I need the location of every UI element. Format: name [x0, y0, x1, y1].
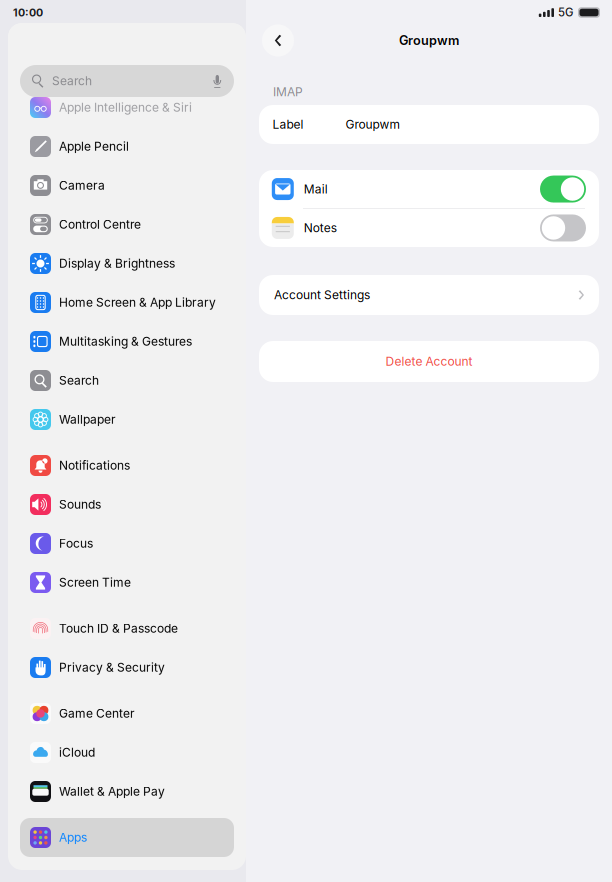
button[interactable]: Wallpaper — [20, 400, 234, 439]
staticText: Wallet & Apple Pay — [59, 784, 165, 799]
button[interactable]: Game Center — [20, 694, 234, 733]
staticText: Control Centre — [59, 217, 141, 232]
staticText: Notes — [304, 221, 337, 235]
button[interactable]: Account Settings — [259, 275, 599, 315]
staticText: Account Settings — [274, 288, 370, 302]
button[interactable]: On — [540, 176, 586, 203]
button[interactable]: Privacy & Security — [20, 648, 234, 687]
staticText: Search — [52, 74, 92, 88]
staticText: Label — [272, 117, 303, 132]
staticText: iCloud — [59, 745, 95, 760]
button[interactable]: Control Centre — [20, 205, 234, 244]
button[interactable]: Search — [20, 361, 234, 400]
button[interactable]: Multitasking & Gestures — [20, 322, 234, 361]
staticText: Game Center — [59, 706, 135, 721]
staticText: Screen Time — [59, 575, 131, 590]
staticText: Touch ID & Passcode — [59, 621, 178, 636]
button[interactable]: Delete Account — [259, 341, 599, 382]
staticText: 10:00 — [13, 6, 43, 19]
staticText: Notifications — [59, 458, 130, 473]
button[interactable]: Notifications — [20, 446, 234, 485]
staticText: Focus — [59, 536, 93, 551]
staticText: Search — [59, 373, 99, 388]
button[interactable]: Back — [262, 24, 294, 56]
staticText: Apple Intelligence & Siri — [59, 100, 192, 115]
button[interactable]: Apps — [20, 818, 234, 857]
staticText: Privacy & Security — [59, 660, 165, 675]
button[interactable]: Apple Intelligence & Siri — [20, 88, 234, 127]
staticText: Sounds — [59, 497, 101, 512]
staticText: Apple Pencil — [59, 139, 129, 154]
staticText: Display & Brightness — [59, 256, 175, 271]
staticText: Groupwm — [399, 33, 459, 48]
staticText: Delete Account — [385, 354, 472, 369]
button[interactable]: Apple Pencil — [20, 127, 234, 166]
staticText: IMAP — [273, 85, 303, 99]
button[interactable]: Display & Brightness — [20, 244, 234, 283]
button[interactable]: Focus — [20, 524, 234, 563]
button[interactable]: Home Screen & App Library — [20, 283, 234, 322]
button[interactable]: Off — [540, 214, 586, 241]
button[interactable]: iCloud — [20, 733, 234, 772]
staticText: Multitasking & Gestures — [59, 334, 192, 349]
staticText: Groupwm — [345, 117, 400, 132]
button[interactable]: Screen Time — [20, 563, 234, 602]
staticText: Home Screen & App Library — [59, 295, 216, 310]
button[interactable]: Sounds — [20, 485, 234, 524]
staticText: 5G — [558, 6, 573, 19]
staticText: Camera — [59, 178, 105, 193]
button[interactable]: Camera — [20, 166, 234, 205]
staticText: Mail — [304, 182, 328, 196]
button[interactable]: Wallet & Apple Pay — [20, 772, 234, 811]
staticText: Apps — [59, 830, 87, 845]
staticText: Wallpaper — [59, 412, 116, 427]
button[interactable]: Touch ID & Passcode — [20, 609, 234, 648]
